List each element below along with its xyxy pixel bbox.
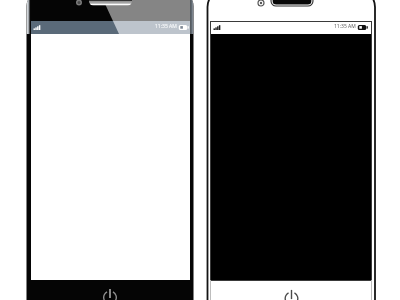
staticText: 11:35 AM <box>155 23 177 30</box>
button[interactable]: Power button <box>280 286 304 300</box>
button[interactable]: Phone screen, light theme <box>31 21 190 280</box>
staticText: 11:35 AM <box>334 23 356 30</box>
button[interactable]: Power button <box>98 285 122 300</box>
button[interactable]: Phone screen, dark theme <box>211 21 371 280</box>
